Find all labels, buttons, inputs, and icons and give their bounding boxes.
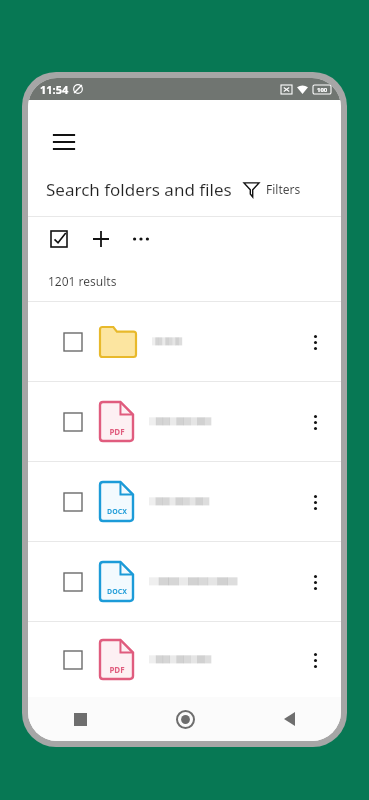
button[interactable]: Select item xyxy=(60,489,86,515)
button[interactable]: Item options xyxy=(297,564,333,600)
button[interactable]: Select item xyxy=(60,329,86,355)
button[interactable]: Select item xyxy=(28,622,341,697)
button[interactable]: More options xyxy=(124,222,158,256)
button[interactable]: Add xyxy=(84,222,118,256)
button[interactable]: Select item xyxy=(60,647,86,673)
button[interactable]: Select item xyxy=(28,302,341,381)
button[interactable]: Back xyxy=(237,697,341,741)
staticText: 11:54 xyxy=(40,82,69,97)
staticText: Search folders and files xyxy=(46,178,232,201)
button[interactable]: Home xyxy=(133,697,237,741)
staticText: Filters xyxy=(266,181,301,197)
button[interactable]: Select item xyxy=(60,569,86,595)
button[interactable]: Select all xyxy=(42,222,76,256)
staticText: DOCX xyxy=(107,507,127,517)
staticText: 100 xyxy=(317,86,328,94)
button[interactable]: Recent apps xyxy=(28,697,133,741)
button[interactable]: Select item xyxy=(28,382,341,461)
button[interactable]: Item options xyxy=(297,324,333,360)
button[interactable]: Search folders and files xyxy=(28,162,341,216)
staticText: PDF xyxy=(109,426,125,437)
button[interactable]: Item options xyxy=(297,642,333,678)
staticText: DOCX xyxy=(107,587,127,597)
button[interactable]: Open navigation menu xyxy=(44,122,84,162)
button[interactable]: Select item xyxy=(28,462,341,541)
button[interactable]: Select item xyxy=(60,409,86,435)
button[interactable]: Item options xyxy=(297,484,333,520)
staticText: PDF xyxy=(109,664,125,675)
button[interactable]: Select item xyxy=(28,542,341,621)
button[interactable]: Item options xyxy=(297,404,333,440)
staticText: 1201 results xyxy=(48,273,117,289)
